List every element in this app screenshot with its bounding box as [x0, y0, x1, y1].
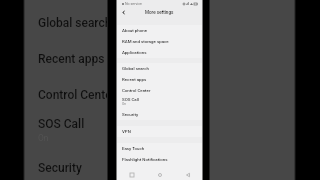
staticText: Control Center — [122, 88, 151, 93]
button[interactable]: VPN — [117, 126, 202, 137]
staticText: Recent apps — [122, 77, 147, 82]
staticText: Recent apps — [38, 52, 133, 66]
button[interactable]: Security — [117, 109, 202, 120]
staticText: More settings — [145, 10, 174, 15]
button[interactable]: Back — [174, 170, 202, 180]
staticText: Global search — [122, 66, 149, 71]
button[interactable]: SOS Call — [117, 96, 202, 109]
staticText: RAM and storage space — [122, 39, 169, 44]
staticText: SOS Call — [122, 97, 139, 102]
button[interactable]: RAM and storage space — [117, 36, 202, 47]
staticText: SOS Call — [38, 117, 133, 131]
button[interactable]: Recent apps — [117, 170, 146, 180]
button[interactable]: Flashlight Notifications — [117, 154, 202, 165]
staticText: Flashlight Notifications — [122, 157, 168, 162]
button[interactable]: About phone — [117, 25, 202, 36]
button[interactable]: Recent apps — [117, 74, 202, 85]
button[interactable]: Applications — [117, 47, 202, 58]
staticText: Security — [122, 112, 139, 117]
staticText: No service — [125, 2, 142, 6]
staticText: On — [38, 133, 49, 143]
staticText: Applications — [122, 50, 147, 55]
staticText: VPN — [122, 129, 131, 134]
staticText: Control Center — [38, 88, 133, 102]
button[interactable]: Easy Touch — [117, 143, 202, 154]
button[interactable]: Control Center — [117, 85, 202, 96]
staticText: About phone — [122, 28, 148, 33]
staticText: Security — [38, 161, 133, 175]
button[interactable]: Back — [120, 9, 127, 16]
staticText: Easy Touch — [122, 146, 145, 151]
button[interactable]: Global search — [117, 63, 202, 74]
button[interactable]: Home — [146, 170, 174, 180]
staticText: Global search — [38, 16, 133, 30]
staticText: On — [122, 102, 127, 106]
